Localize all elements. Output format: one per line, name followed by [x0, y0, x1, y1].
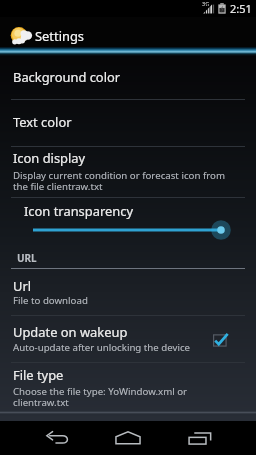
button[interactable]: Update on wakeup — [0, 315, 256, 362]
staticText: Text color — [13, 113, 72, 131]
staticText: Url — [13, 277, 32, 295]
button[interactable]: Background color — [0, 52, 256, 100]
staticText: File type — [13, 366, 64, 384]
staticText: File to download — [13, 294, 88, 307]
staticText: Choose the file type: YoWindow.xml or cl… — [13, 385, 188, 409]
staticText: Icon display — [13, 149, 86, 167]
staticText: Settings — [35, 27, 85, 45]
button[interactable]: File type — [0, 362, 256, 418]
button[interactable]: Recent apps — [172, 421, 228, 455]
staticText: 2:51 — [230, 1, 252, 16]
staticText: 3G — [202, 0, 210, 7]
button[interactable]: Back — [29, 421, 85, 455]
staticText: Update on wakeup — [13, 323, 128, 341]
staticText: Auto-update after unlocking the device — [13, 341, 191, 354]
staticText: URL — [17, 251, 37, 265]
staticText: Background color — [13, 68, 121, 86]
staticText: Display current condition or forecast ic… — [13, 169, 225, 193]
button[interactable]: Update on wakeup checkbox — [208, 328, 232, 352]
button[interactable]: Text color — [0, 100, 256, 146]
button[interactable]: Url — [0, 269, 256, 315]
staticText: Icon transparency — [24, 202, 133, 220]
button[interactable]: Home — [100, 421, 156, 455]
button[interactable]: Icon transparency — [0, 197, 256, 251]
button[interactable]: Icon display — [0, 146, 256, 197]
